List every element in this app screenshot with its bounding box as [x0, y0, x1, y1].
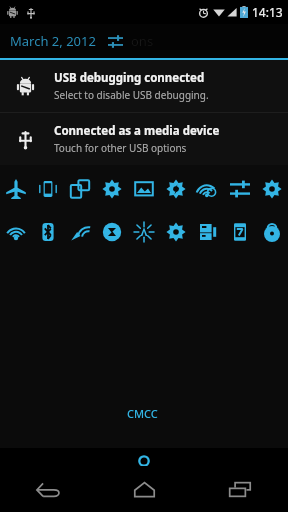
staticText: March 2, 2012 — [10, 32, 96, 50]
button[interactable]: USB debugging connected — [0, 60, 288, 112]
staticText: CMCC — [127, 406, 158, 421]
button[interactable]: Sync — [96, 215, 128, 249]
button[interactable]: Settings — [160, 215, 192, 249]
staticText: 14:13 — [252, 4, 283, 20]
button[interactable]: Auto brightness — [128, 215, 160, 249]
button[interactable]: Auto rotate — [64, 172, 96, 206]
staticText: Touch for other USB options — [54, 141, 187, 155]
button[interactable]: Pointer location — [0, 397, 288, 441]
button[interactable]: Sliders — [224, 172, 256, 206]
staticText: Select to disable USB debugging. — [54, 88, 209, 102]
staticText: Connected as a media device — [54, 123, 220, 139]
button[interactable]: Home — [96, 466, 192, 512]
button[interactable]: GPS — [64, 215, 96, 249]
button[interactable]: Recent apps — [192, 466, 288, 512]
button[interactable]: Screen lock — [256, 215, 288, 249]
button[interactable]: Wi-Fi timer — [192, 172, 224, 206]
button[interactable]: Calendar — [224, 215, 256, 249]
staticText: ons — [131, 32, 154, 50]
staticText: USB debugging connected — [54, 70, 205, 86]
button[interactable]: Brightness — [96, 172, 128, 206]
button[interactable]: Wallpaper — [128, 172, 160, 206]
button[interactable]: Connected as a media device — [0, 113, 288, 165]
button[interactable]: Settings — [256, 172, 288, 206]
button[interactable]: Vibrate — [32, 172, 64, 206]
button[interactable]: Input method — [192, 215, 224, 249]
button[interactable]: Back — [0, 466, 96, 512]
button[interactable]: Wi-Fi — [0, 215, 32, 249]
button[interactable]: Airplane mode — [0, 172, 32, 206]
button[interactable]: Close notification shade — [130, 451, 158, 471]
staticText: Screen overlay showing current touch dat… — [16, 415, 193, 441]
button[interactable]: Settings — [104, 30, 126, 52]
button[interactable]: Flash — [160, 172, 192, 206]
button[interactable]: Bluetooth — [32, 215, 64, 249]
